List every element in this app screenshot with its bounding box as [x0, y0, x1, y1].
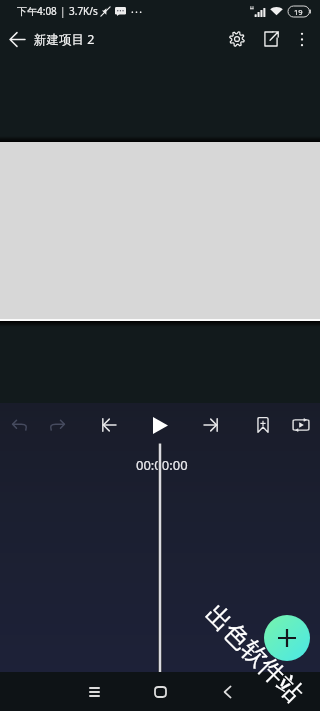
button[interactable]: Loop playback [284, 408, 318, 442]
button[interactable]: Settings [220, 22, 254, 56]
button[interactable]: Recent apps [72, 672, 116, 711]
button[interactable]: More options [288, 25, 316, 53]
button[interactable]: Add media [264, 615, 310, 661]
button[interactable]: Back [205, 672, 249, 711]
staticText: 19 [294, 7, 303, 17]
button[interactable]: Skip to end [194, 408, 228, 442]
staticText: 3.7K/s [69, 4, 98, 18]
staticText: 出色软件站 [199, 598, 310, 709]
button[interactable]: Bookmark [246, 408, 280, 442]
staticText: | [60, 4, 66, 18]
button[interactable]: Home [138, 672, 182, 711]
button[interactable]: Skip to start [92, 408, 126, 442]
staticText: 下午4:08 [17, 4, 57, 18]
button[interactable]: Undo [2, 408, 36, 442]
staticText: 00:00:00 [136, 456, 188, 474]
staticText: 新建项目 2 [34, 31, 95, 48]
button[interactable]: Export [254, 22, 288, 56]
button[interactable]: Back [0, 22, 34, 56]
button[interactable]: Redo [40, 408, 74, 442]
button[interactable]: Play [143, 408, 177, 442]
